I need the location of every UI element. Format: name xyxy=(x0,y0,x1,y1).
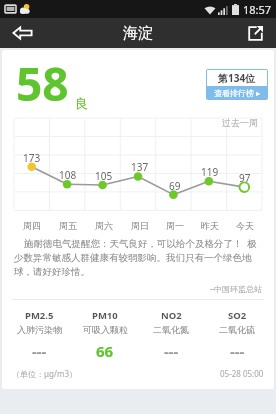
staticText: 97 xyxy=(239,171,251,185)
button[interactable]: PM2.5 xyxy=(6,309,72,361)
staticText: 今天 xyxy=(236,220,254,231)
button[interactable]: Share xyxy=(234,18,276,48)
staticText: 查看排行榜 ▸ xyxy=(214,87,261,98)
staticText: 173 xyxy=(23,151,41,165)
staticText: 二氧化氮 xyxy=(153,324,189,335)
staticText: --- xyxy=(32,341,47,361)
staticText: 周日 xyxy=(131,220,149,231)
staticText: 137 xyxy=(131,160,149,174)
staticText: 周一 xyxy=(166,220,184,231)
button[interactable]: PM10 xyxy=(72,309,138,361)
button[interactable]: NO2 xyxy=(138,309,204,361)
staticText: 良 xyxy=(75,95,88,111)
staticText: 58 xyxy=(16,52,69,115)
staticText: 可吸入颗粒 xyxy=(83,324,128,335)
staticText: NO2 xyxy=(161,309,182,322)
button[interactable]: SO2 xyxy=(204,309,270,361)
staticText: PM10 xyxy=(92,309,118,322)
staticText: 过去一周 xyxy=(222,117,258,128)
staticText: 66 xyxy=(96,341,114,361)
staticText: 18:57 xyxy=(243,2,272,17)
staticText: 05-28 05:00 xyxy=(220,368,264,379)
staticText: PM2.5 xyxy=(25,309,54,322)
button[interactable]: 第134位 xyxy=(206,69,268,100)
staticText: 119 xyxy=(201,165,219,179)
staticText: 69 xyxy=(169,179,181,193)
staticText: --- xyxy=(230,341,245,361)
staticText: --- xyxy=(164,341,179,361)
staticText: 周六 xyxy=(95,220,113,231)
button[interactable]: Back xyxy=(0,18,44,48)
staticText: 周四 xyxy=(23,220,41,231)
staticText: 第134位 xyxy=(218,71,256,85)
staticText: 108 xyxy=(59,168,77,182)
staticText: 二氧化硫 xyxy=(219,324,255,335)
staticText: 入肺污染物 xyxy=(17,324,62,335)
staticText: 昨天 xyxy=(201,220,219,231)
staticText: 施耐德电气提醒您：天气良好，可以给个及格分了！ 极少数异常敏感人群健康有较弱影响… xyxy=(14,237,262,278)
staticText: （单位：μg/m3） xyxy=(12,368,77,379)
staticText: SO2 xyxy=(228,309,247,322)
staticText: 周五 xyxy=(59,220,77,231)
staticText: –中国环监总站 xyxy=(14,283,262,294)
staticText: 海淀 xyxy=(123,24,153,43)
staticText: 105 xyxy=(95,169,113,183)
